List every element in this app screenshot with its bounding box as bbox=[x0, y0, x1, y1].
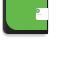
button[interactable] bbox=[6, 0, 47, 30]
button[interactable]: Open details bbox=[36, 8, 48, 20]
